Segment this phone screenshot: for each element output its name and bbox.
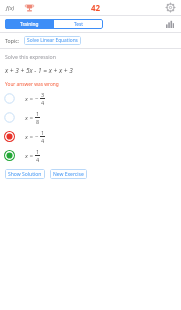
staticText: 4 — [36, 156, 40, 163]
button[interactable]: x = — [0, 127, 181, 146]
staticText: x + 3 + 5x − 1 = x + x + 3 — [5, 66, 73, 75]
staticText: − — [35, 95, 39, 103]
staticText: 1 — [36, 110, 40, 117]
button[interactable]: Solve Linear Equations — [24, 36, 81, 45]
staticText: x = — [25, 133, 33, 141]
staticText: Your answer was wrong — [5, 81, 59, 88]
staticText: 4 — [41, 137, 45, 144]
staticText: 4 — [41, 99, 45, 106]
staticText: x = — [25, 95, 33, 103]
staticText: Solve this expression — [5, 53, 56, 60]
button[interactable]: x = — [0, 89, 181, 108]
staticText: x = — [25, 114, 33, 122]
staticText: Solve Linear Equations — [27, 37, 78, 44]
button[interactable]: Formulas — [4, 1, 17, 14]
button[interactable]: x = — [0, 108, 181, 127]
staticText: Training — [20, 21, 39, 28]
button[interactable]: New Exercise — [50, 169, 87, 179]
button[interactable]: Settings — [164, 1, 177, 14]
staticText: Topic: — [5, 37, 20, 44]
staticText: 3 — [41, 91, 45, 98]
staticText: f(x) — [6, 4, 15, 12]
staticText: 1 — [36, 148, 40, 155]
staticText: Show Solution — [8, 171, 42, 178]
staticText: 8 — [36, 118, 40, 125]
button[interactable]: x = — [0, 146, 181, 165]
staticText: x = — [25, 152, 33, 160]
button[interactable]: Training — [5, 19, 54, 29]
staticText: 1 — [41, 129, 45, 136]
button[interactable]: Test — [54, 19, 103, 29]
staticText: Test — [74, 21, 84, 28]
button[interactable]: Achievements — [23, 1, 36, 14]
staticText: New Exercise — [53, 171, 84, 178]
button[interactable]: Show Solution — [5, 169, 45, 179]
button[interactable]: Statistics — [164, 18, 176, 30]
staticText: − — [35, 133, 39, 141]
staticText: 42 — [91, 2, 101, 13]
